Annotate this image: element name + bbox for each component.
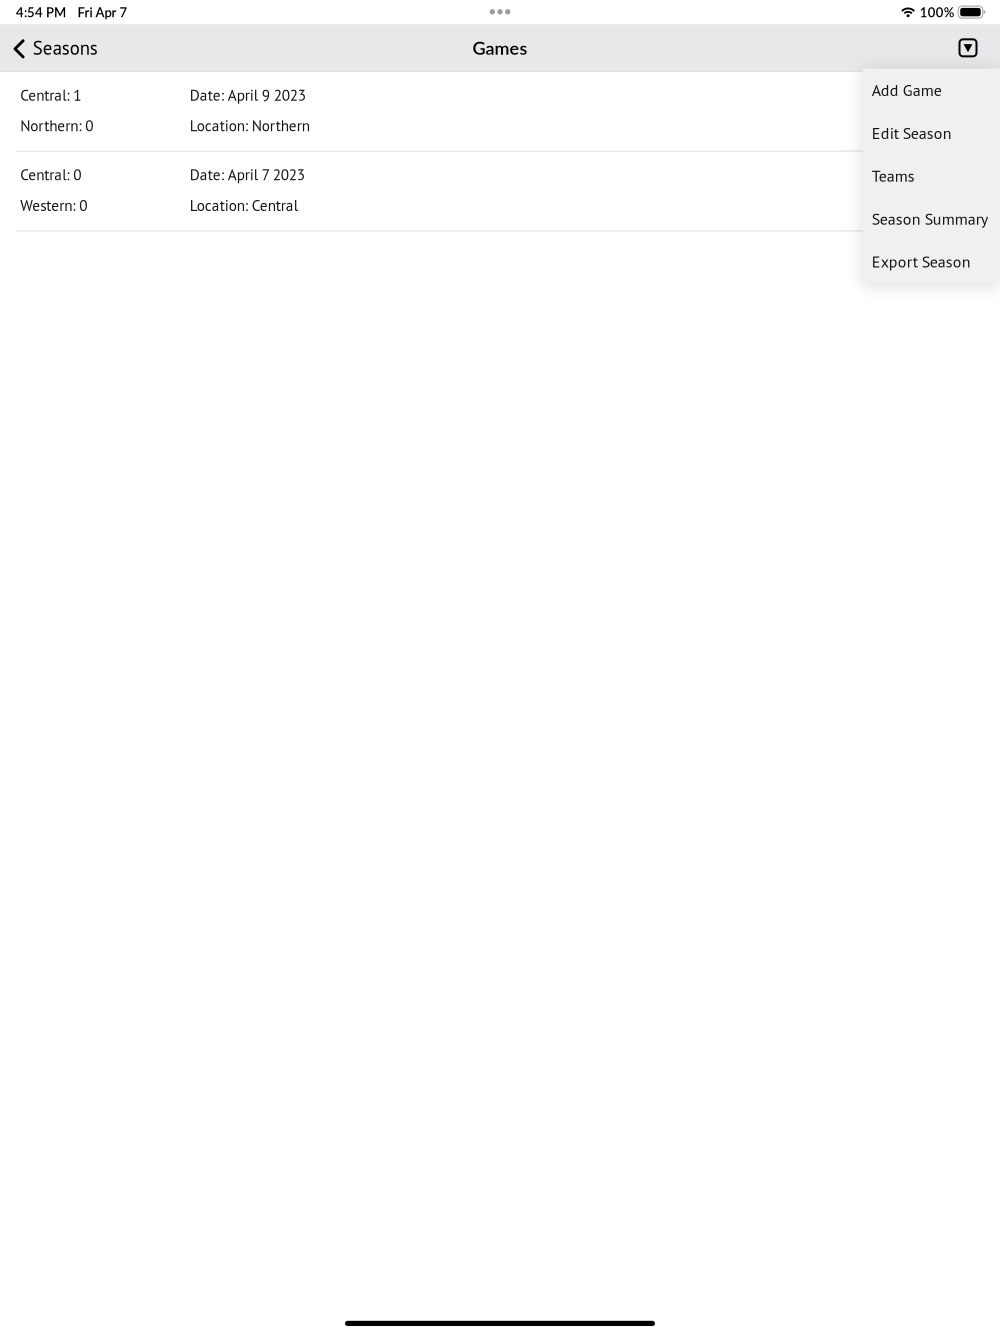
staticText: Location: Northern [190, 116, 310, 136]
staticText: Central: 1 [20, 85, 81, 105]
staticText: Edit Season [872, 123, 952, 143]
button[interactable]: Central: 0 [0, 152, 1000, 230]
staticText: Seasons [33, 36, 98, 60]
button[interactable]: Season Summary [863, 197, 1000, 240]
staticText: Location: Central [190, 195, 298, 215]
button[interactable]: Central: 1 [0, 72, 1000, 150]
staticText: Central: 0 [20, 165, 81, 185]
staticText: 100% [920, 4, 955, 20]
staticText: Season Summary [872, 208, 988, 229]
button[interactable]: Add Game [863, 69, 1000, 111]
staticText: 4:54 PM [16, 4, 66, 20]
staticText: Add Game [872, 80, 942, 100]
staticText: Export Season [872, 251, 971, 272]
staticText: Fri Apr 7 [77, 4, 127, 20]
staticText: Date: April 9 2023 [190, 85, 306, 105]
staticText: Games [472, 37, 527, 59]
staticText: Western: 0 [20, 195, 87, 215]
staticText: Northern: 0 [20, 116, 93, 136]
staticText: Date: April 7 2023 [190, 165, 305, 185]
button[interactable]: Seasons [0, 24, 108, 71]
button[interactable]: Menu [946, 24, 1000, 71]
button[interactable]: Export Season [863, 240, 1000, 283]
button[interactable]: Teams [863, 154, 1000, 197]
staticText: Teams [872, 165, 915, 186]
button[interactable]: Edit Season [863, 111, 1000, 154]
